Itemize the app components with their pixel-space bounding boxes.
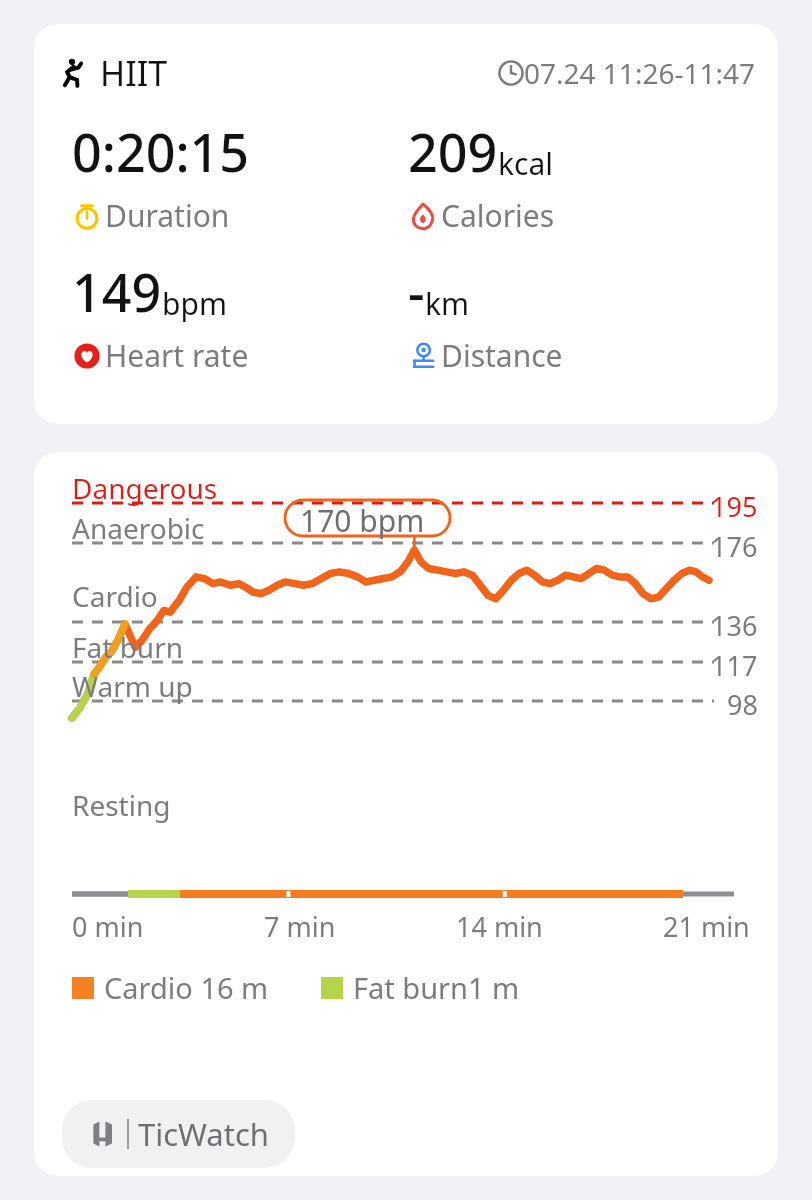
staticText: 7 min [264, 908, 336, 945]
staticText: Calories [441, 195, 555, 236]
staticText: kcal [498, 143, 553, 184]
staticText: bpm [162, 283, 227, 324]
staticText: 14 min [456, 908, 543, 945]
staticText: Duration [105, 195, 230, 236]
staticText: 21 min [663, 908, 750, 945]
staticText: 136 [711, 607, 758, 644]
staticText: 176 [711, 528, 758, 565]
staticText: 195 [711, 488, 758, 525]
staticText: 170 bpm [300, 500, 425, 541]
staticText: 117 [711, 647, 758, 684]
staticText: TicWatch [138, 1113, 269, 1155]
staticText: Cardio [72, 577, 158, 615]
staticText: 0 min [72, 908, 144, 945]
button[interactable]: 0:20:15 [72, 116, 406, 236]
staticText: Fat burn [72, 628, 184, 666]
staticText: Resting [72, 786, 171, 824]
staticText: 98 [727, 686, 758, 723]
button[interactable]: - [408, 256, 778, 376]
staticText: 149 [72, 256, 162, 327]
button[interactable]: 149 [72, 256, 406, 376]
staticText: HIIT [100, 50, 168, 96]
staticText: 209 [408, 116, 498, 187]
staticText: km [425, 283, 470, 324]
staticText: Dangerous [72, 469, 218, 507]
staticText: - [408, 256, 425, 327]
staticText: Anaerobic [72, 509, 205, 547]
button[interactable]: TicWatch [62, 1100, 295, 1168]
staticText: Heart rate [105, 335, 249, 376]
staticText: Distance [441, 335, 563, 376]
staticText: Warm up [72, 667, 193, 705]
staticText: Fat burn1 m [353, 968, 520, 1007]
staticText: 07.24 11:26-11:47 [524, 54, 756, 92]
button[interactable]: 209 [408, 116, 778, 236]
staticText: Cardio 16 m [104, 968, 269, 1007]
staticText: 0:20:15 [72, 116, 250, 187]
